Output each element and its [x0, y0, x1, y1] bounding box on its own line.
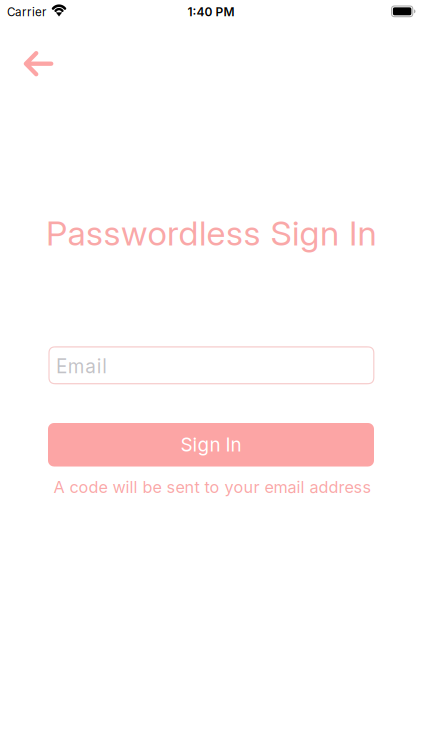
staticText: Carrier [7, 5, 46, 19]
button[interactable]: Sign In [48, 423, 374, 466]
button[interactable]: Email [48, 346, 374, 384]
staticText: 1:40 PM [187, 5, 234, 19]
staticText: Email [56, 355, 107, 378]
staticText: A code will be sent to your email addres… [54, 477, 372, 497]
button[interactable]: Back [16, 42, 60, 86]
staticText: Sign In [180, 433, 241, 456]
staticText: Passwordless Sign In [46, 212, 376, 254]
